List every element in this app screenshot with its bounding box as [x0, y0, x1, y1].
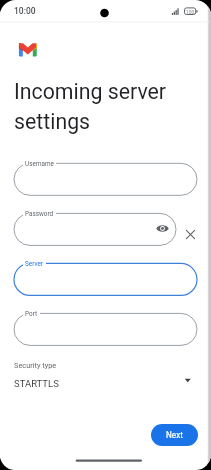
staticText: Security type — [14, 361, 57, 370]
button[interactable] — [14, 213, 176, 245]
staticText: Incoming server settings — [14, 79, 204, 134]
staticText: STARTTLS — [14, 378, 59, 389]
button[interactable] — [14, 163, 197, 195]
button[interactable]: Next — [151, 424, 198, 446]
button[interactable]: Show password — [155, 221, 170, 236]
staticText: Next — [166, 430, 183, 440]
staticText: Server — [25, 260, 44, 268]
staticText: 10:00 — [14, 6, 36, 16]
staticText: Username — [25, 160, 54, 168]
button[interactable]: Clear password — [183, 227, 198, 242]
button[interactable] — [0, 358, 211, 392]
staticText: 100 — [186, 9, 195, 15]
button[interactable] — [14, 263, 197, 295]
staticText: Port — [25, 310, 38, 318]
staticText: Password — [25, 210, 54, 218]
button[interactable] — [14, 313, 197, 345]
